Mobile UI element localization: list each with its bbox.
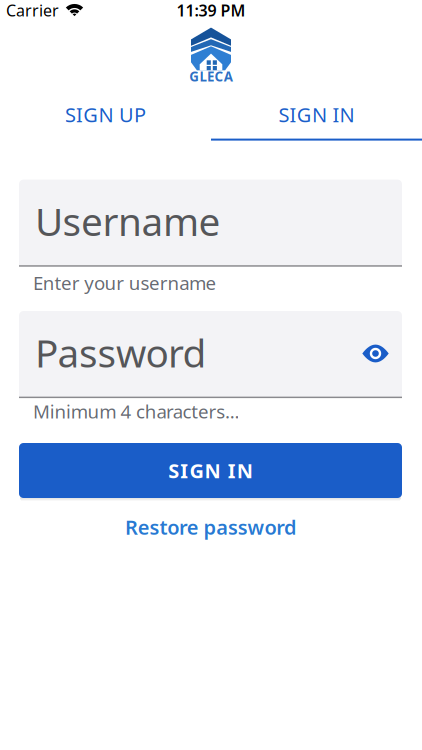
button[interactable]: Restore password bbox=[125, 512, 297, 542]
staticText: Carrier bbox=[6, 0, 59, 21]
button[interactable]: Show password bbox=[359, 337, 391, 369]
staticText: Username bbox=[35, 195, 220, 247]
button[interactable]: SIGN IN bbox=[19, 443, 402, 498]
staticText: Restore password bbox=[125, 514, 297, 540]
staticText: SIGN IN bbox=[168, 457, 253, 484]
button[interactable]: SIGN UP bbox=[0, 92, 211, 136]
staticText: Password bbox=[35, 327, 206, 378]
staticText: 11:39 PM bbox=[176, 0, 245, 21]
staticText: GLECA bbox=[189, 67, 233, 85]
staticText: SIGN UP bbox=[65, 101, 146, 128]
staticText: Minimum 4 characters... bbox=[33, 399, 239, 424]
button[interactable]: SIGN IN bbox=[211, 92, 422, 136]
staticText: SIGN IN bbox=[278, 101, 355, 128]
staticText: Enter your username bbox=[33, 270, 217, 295]
